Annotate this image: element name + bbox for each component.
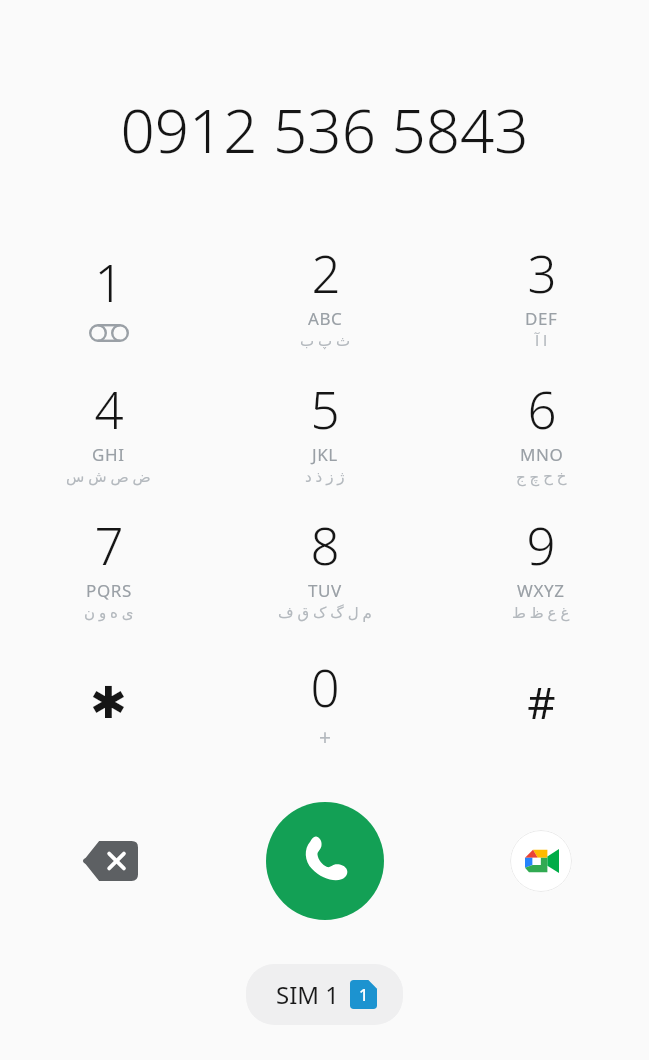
button[interactable]: SIM 1 [246,964,403,1025]
staticText: خ ح چ ج [516,466,567,486]
button[interactable]: 8 [217,498,433,634]
staticText: 9 [526,510,556,579]
staticText: 3 [527,238,557,307]
button[interactable]: 0 [217,634,433,770]
staticText: ✱ [90,677,127,728]
staticText: ض ص ش س [66,466,151,486]
staticText: ث پ ب [300,330,351,350]
button[interactable]: 9 [433,498,649,634]
staticText: 4 [94,374,124,443]
staticText: 7 [94,510,124,579]
staticText: 2 [311,238,341,307]
staticText: MNO [520,443,564,466]
staticText: DEF [525,307,558,330]
button[interactable]: 1 [0,226,217,362]
button[interactable]: 6 [433,362,649,498]
staticText: 6 [527,374,557,443]
button[interactable]: Backspace [73,825,145,897]
staticText: WXYZ [517,579,565,602]
button[interactable]: ✱ [0,634,217,770]
staticText: # [527,672,556,732]
staticText: ا آ [535,330,548,350]
staticText: 8 [310,510,340,579]
staticText: 1 [359,984,369,1006]
staticText: 0 [310,652,340,721]
button[interactable]: 2 [217,226,433,362]
button[interactable]: Call [266,802,384,920]
button[interactable]: 3 [433,226,649,362]
staticText: GHI [92,443,125,466]
staticText: ABC [308,307,343,330]
staticText: + [319,723,332,752]
button[interactable]: 5 [217,362,433,498]
staticText: ی ه و ن [84,602,134,622]
staticText: غ ع ظ ط [512,602,570,622]
staticText: م ل گ ک ق ف [278,602,372,622]
staticText: JKL [312,443,338,466]
staticText: SIM 1 [276,978,340,1011]
staticText: 5 [310,374,340,443]
staticText: 1 [94,247,124,316]
staticText: 0912 536 5843 [120,89,529,171]
button[interactable]: 7 [0,498,217,634]
button[interactable]: # [433,634,649,770]
staticText: PQRS [86,579,132,602]
button[interactable]: Video call [510,830,572,892]
staticText: ژ ز ذ د [305,466,345,486]
button[interactable]: 4 [0,362,217,498]
staticText: TUV [308,579,342,602]
